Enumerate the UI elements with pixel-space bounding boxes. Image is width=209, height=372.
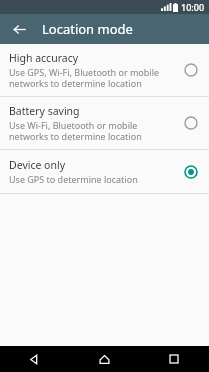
button[interactable]: Home	[69, 346, 139, 372]
staticText: Location mode	[42, 20, 133, 38]
staticText: Device only	[9, 158, 66, 172]
staticText: Battery saving	[9, 104, 80, 118]
button[interactable]: High accuracy	[0, 44, 209, 96]
staticText: 10:00	[181, 1, 205, 13]
button[interactable]: Device only	[0, 150, 209, 193]
button[interactable]: Navigate up	[10, 20, 28, 38]
button[interactable]: Recent apps	[139, 346, 209, 372]
staticText: Use GPS, Wi-Fi, Bluetooth or mobile netw…	[9, 66, 175, 89]
button[interactable]: Battery saving	[0, 97, 209, 149]
staticText: Use Wi-Fi, Bluetooth or mobile networks …	[9, 119, 175, 142]
staticText: High accuracy	[9, 51, 79, 65]
staticText: Use GPS to determine location	[9, 173, 138, 185]
button[interactable]: Back	[0, 346, 69, 372]
